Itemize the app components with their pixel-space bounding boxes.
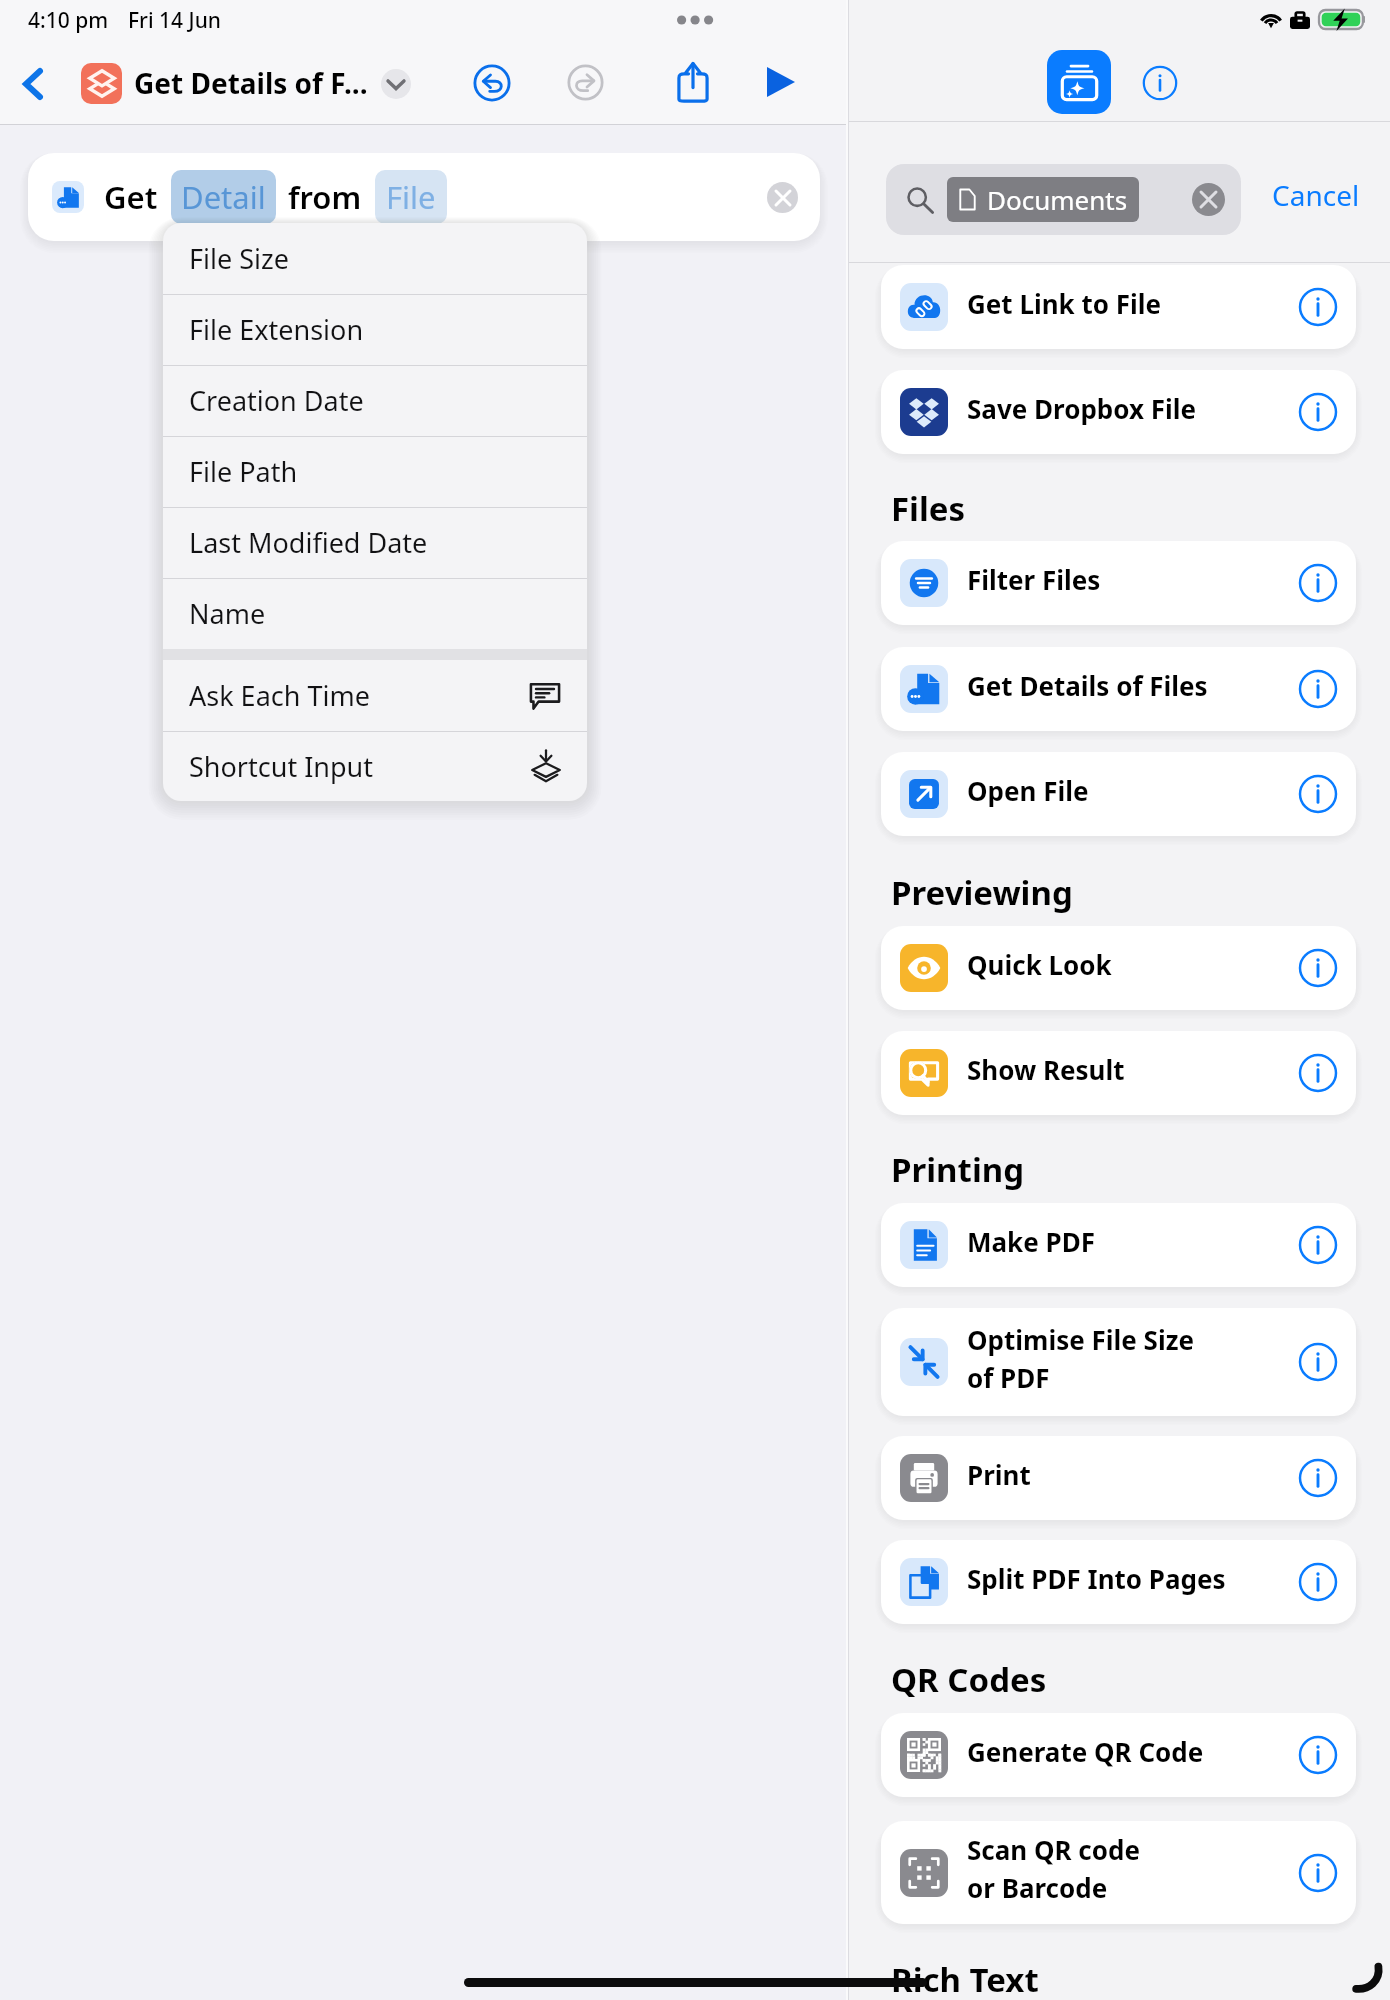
button[interactable]: Redo xyxy=(556,53,615,112)
staticText: Get xyxy=(104,176,158,218)
staticText: Scan QR code xyxy=(967,1832,1140,1867)
button[interactable]: Undo xyxy=(462,53,521,112)
staticText: Make PDF xyxy=(967,1224,1095,1259)
button[interactable]: Print xyxy=(881,1436,1356,1520)
button[interactable]: Cancel xyxy=(1264,166,1374,224)
button[interactable]: Get xyxy=(28,153,820,241)
button[interactable]: Optimise File Size xyxy=(881,1308,1356,1416)
button[interactable]: About Split PDF Into Pages xyxy=(1296,1560,1340,1604)
button[interactable]: Shortcut options xyxy=(381,69,411,99)
staticText: File Path xyxy=(189,453,298,490)
button[interactable]: About Get Link to File xyxy=(1296,285,1340,329)
staticText: Name xyxy=(189,595,266,632)
button[interactable]: Documents xyxy=(886,164,1241,235)
staticText: File Extension xyxy=(189,311,364,348)
button[interactable]: Shortcut Input xyxy=(163,731,587,801)
button[interactable]: About Make PDF xyxy=(1296,1223,1340,1267)
button[interactable]: About Show Result xyxy=(1296,1051,1340,1095)
button[interactable]: Back xyxy=(0,46,65,121)
staticText: Get Link to File xyxy=(967,286,1162,321)
staticText: Printing xyxy=(891,1147,1025,1192)
button[interactable]: Name xyxy=(163,578,587,649)
staticText: Cancel xyxy=(1272,176,1360,214)
staticText: Quick Look xyxy=(967,947,1112,982)
button[interactable]: Scan QR code xyxy=(881,1821,1356,1924)
staticText: Fri 14 Jun xyxy=(128,6,222,35)
button[interactable]: About Filter Files xyxy=(1296,561,1340,605)
button[interactable]: Quick Look xyxy=(881,926,1356,1010)
button[interactable]: Open File xyxy=(881,752,1356,836)
button[interactable]: Remove action xyxy=(767,182,798,213)
button[interactable]: File Extension xyxy=(163,294,587,365)
button[interactable]: Generate QR Code xyxy=(881,1713,1356,1797)
staticText: Open File xyxy=(967,773,1089,808)
button[interactable]: File Path xyxy=(163,436,587,507)
staticText: Generate QR Code xyxy=(967,1734,1204,1769)
staticText: Last Modified Date xyxy=(189,524,428,561)
staticText: from xyxy=(288,176,362,218)
button[interactable]: Clear search xyxy=(1192,183,1225,216)
button[interactable]: Run shortcut xyxy=(752,53,810,111)
staticText: Detail xyxy=(181,176,266,218)
staticText: Filter Files xyxy=(967,562,1101,597)
staticText: Rich Text xyxy=(891,1957,1039,2000)
staticText: Get Details of F... xyxy=(134,64,368,102)
staticText: Documents xyxy=(987,182,1128,217)
staticText: File Size xyxy=(189,240,289,277)
button[interactable]: About Open File xyxy=(1296,772,1340,816)
button[interactable]: About Print xyxy=(1296,1456,1340,1500)
staticText: Ask Each Time xyxy=(189,677,370,714)
button[interactable]: Ask Each Time xyxy=(163,660,587,731)
staticText: Optimise File Size xyxy=(967,1322,1195,1357)
staticText: Save Dropbox File xyxy=(967,391,1197,426)
button[interactable]: Share xyxy=(663,52,723,112)
button[interactable]: Show Result xyxy=(881,1031,1356,1115)
staticText: File xyxy=(386,176,436,218)
button[interactable]: Get Details of Files xyxy=(881,647,1356,731)
staticText: Previewing xyxy=(891,870,1073,915)
staticText: Files xyxy=(891,486,966,531)
button[interactable]: Split PDF Into Pages xyxy=(881,1540,1356,1624)
staticText: Shortcut Input xyxy=(189,748,374,785)
staticText: Split PDF Into Pages xyxy=(967,1561,1226,1596)
staticText: Get Details of Files xyxy=(967,668,1208,703)
staticText: 4:10 pm xyxy=(28,6,109,35)
staticText: or Barcode xyxy=(967,1870,1108,1905)
button[interactable]: Information xyxy=(1136,59,1184,107)
button[interactable]: Creation Date xyxy=(163,365,587,436)
button[interactable]: Last Modified Date xyxy=(163,507,587,578)
button[interactable]: About Generate QR Code xyxy=(1296,1733,1340,1777)
button[interactable]: Make PDF xyxy=(881,1203,1356,1287)
button[interactable]: About Save Dropbox File xyxy=(1296,390,1340,434)
staticText: Show Result xyxy=(967,1052,1125,1087)
button[interactable]: Get Link to File xyxy=(881,265,1356,349)
button[interactable]: About Quick Look xyxy=(1296,946,1340,990)
staticText: of PDF xyxy=(967,1360,1050,1395)
staticText: Print xyxy=(967,1457,1031,1492)
button[interactable]: Suggestions xyxy=(1047,50,1111,114)
button[interactable]: About Optimise File Size xyxy=(1296,1340,1340,1384)
staticText: Creation Date xyxy=(189,382,364,419)
button[interactable]: About Get Details of Files xyxy=(1296,667,1340,711)
button[interactable]: About Scan QR code xyxy=(1296,1851,1340,1895)
staticText: QR Codes xyxy=(891,1657,1047,1702)
button[interactable]: Filter Files xyxy=(881,541,1356,625)
button[interactable]: File Size xyxy=(163,223,587,294)
button[interactable]: Save Dropbox File xyxy=(881,370,1356,454)
